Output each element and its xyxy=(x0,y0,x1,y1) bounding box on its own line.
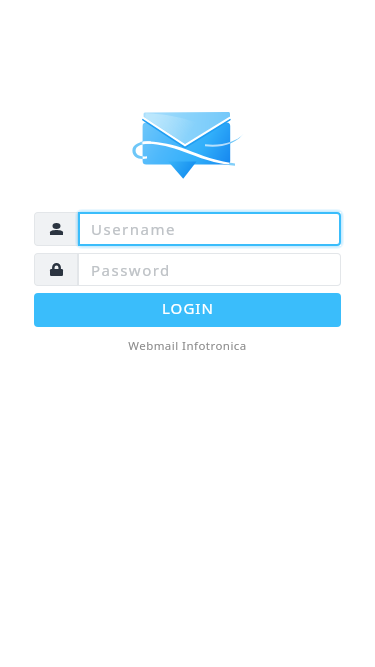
staticText: Webmail Infotronica xyxy=(128,338,247,354)
button[interactable]: Password xyxy=(34,253,341,286)
button[interactable]: User name xyxy=(34,212,341,246)
staticText: LOGIN xyxy=(162,298,214,318)
staticText: Password xyxy=(91,260,171,280)
other: Password xyxy=(50,263,63,276)
staticText: Username xyxy=(91,219,176,239)
other: User name xyxy=(50,223,63,235)
button[interactable]: LOGIN xyxy=(34,293,341,327)
